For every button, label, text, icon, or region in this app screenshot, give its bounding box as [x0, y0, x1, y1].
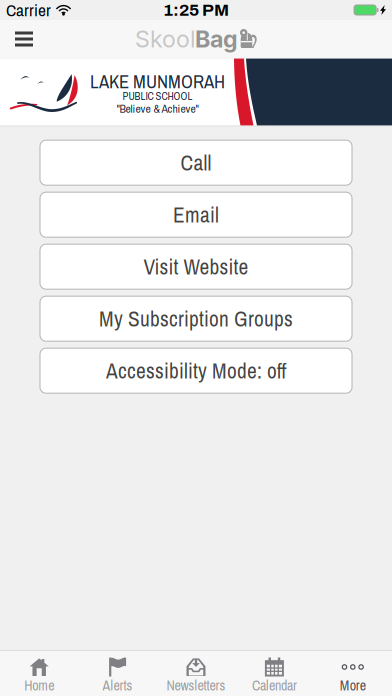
button[interactable]: Email [40, 192, 352, 237]
button[interactable]: Visit Website [40, 244, 352, 289]
button[interactable]: Alerts [78, 650, 157, 696]
button[interactable]: More [314, 650, 392, 696]
staticText: Alerts [103, 676, 133, 695]
staticText: PUBLIC SCHOOL [122, 89, 192, 103]
staticText: Carrier [6, 0, 51, 22]
staticText: "Believe & Achieve" [116, 101, 198, 116]
staticText: Bag [195, 25, 238, 53]
staticText: 1:25 PM [163, 1, 229, 19]
staticText: Email [173, 200, 219, 229]
staticText: Home [24, 676, 54, 695]
staticText: Calendar [252, 676, 297, 695]
staticText: Call [180, 148, 211, 177]
button[interactable]: My Subscription Groups [40, 296, 352, 341]
staticText: LAKE MUNMORAH [90, 69, 225, 94]
staticText: My Subscription Groups [99, 304, 293, 333]
button[interactable]: Menu [0, 20, 47, 57]
staticText: Visit Website [143, 252, 248, 281]
button[interactable]: Calendar [235, 650, 314, 696]
button[interactable]: Accessibility Mode: off [40, 348, 352, 393]
staticText: Newsletters [166, 676, 225, 695]
staticText: Skool [135, 25, 195, 53]
button[interactable]: Call [40, 140, 352, 185]
staticText: More [340, 676, 366, 695]
button[interactable]: Home [0, 650, 78, 696]
staticText: Accessibility Mode: off [106, 356, 286, 385]
button[interactable]: Newsletters [157, 650, 235, 696]
